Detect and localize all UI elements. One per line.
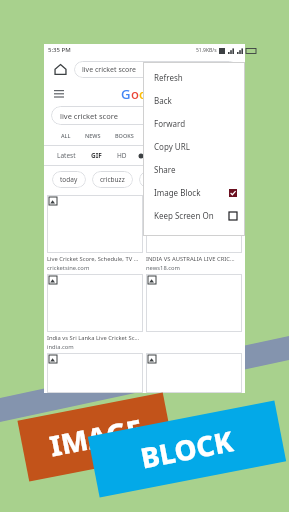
staticText: INDIA VS AUSTRALIA LIVE CRIC... [146, 255, 235, 263]
staticText: GIF [91, 151, 102, 160]
button[interactable]: ALL [54, 132, 78, 139]
staticText: Share [154, 164, 176, 175]
staticText: india.com [47, 343, 74, 351]
button[interactable]: HD [113, 151, 131, 160]
staticText: g [147, 85, 156, 103]
staticText: o [131, 85, 139, 103]
staticText: e [160, 85, 168, 103]
button[interactable]: Menu [51, 86, 67, 102]
staticText: HD [117, 151, 127, 160]
button[interactable] [146, 353, 242, 393]
button[interactable] [47, 353, 143, 393]
button[interactable]: today [52, 171, 86, 188]
button[interactable]: live cricket score [74, 61, 238, 78]
staticText: G [121, 85, 131, 103]
button[interactable]: live cricket score [51, 106, 238, 125]
button[interactable]: Copy URL [143, 135, 245, 158]
button[interactable]: Image Block [143, 181, 245, 204]
button[interactable]: India vs Sri Lanka Live Cricket Sc... [47, 274, 143, 351]
staticText: BOOKS [115, 132, 134, 139]
staticText: cricbuzz [100, 175, 125, 184]
staticText: India vs Sri Lanka Live Cricket Sc... [47, 334, 140, 342]
staticText: ALL [61, 132, 71, 139]
button[interactable]: GIF [87, 151, 106, 160]
staticText: l [156, 85, 160, 103]
staticText: Back [154, 95, 172, 106]
button[interactable]: Share [143, 158, 245, 181]
button[interactable]: ind [139, 171, 165, 188]
staticText: Live Cricket Score, Schedule, TV ... [47, 255, 139, 263]
button[interactable]: Keep Screen On [143, 204, 245, 227]
staticText: IMAGE [46, 409, 146, 465]
staticText: Latest [57, 151, 76, 160]
staticText: Forward [154, 118, 186, 129]
button[interactable]: Home [51, 60, 69, 78]
staticText: today [60, 175, 78, 184]
button[interactable]: Latest [53, 151, 80, 160]
button[interactable]: cricbuzz [92, 171, 133, 188]
button[interactable]: Refresh [143, 66, 245, 89]
staticText: cricketsine.com [47, 264, 90, 272]
button[interactable]: Forward [143, 112, 245, 135]
staticText: Copy URL [154, 141, 190, 152]
button[interactable]: INDIA VS AUSTRALIA LIVE CRIC... [146, 195, 242, 272]
staticText: NEWS [85, 132, 101, 139]
staticText: o [139, 85, 147, 103]
button[interactable]: IM [141, 132, 162, 139]
staticText: live cricket score [60, 111, 118, 121]
staticText: live cricket score [82, 65, 137, 75]
button[interactable]: Live Cricket Score, Schedule, TV ... [47, 195, 143, 272]
button[interactable]: BOOKS [108, 132, 141, 139]
staticText: BLOCK [137, 421, 237, 477]
button[interactable]: NEWS [78, 132, 108, 139]
button[interactable] [146, 274, 242, 332]
staticText: Image Block [154, 187, 201, 198]
staticText: news18.com [146, 264, 180, 272]
staticText: Refresh [154, 72, 183, 83]
button[interactable]: Back [143, 89, 245, 112]
staticText: Keep Screen On [154, 210, 214, 221]
staticText: 5:35 PM [48, 46, 71, 54]
staticText: 51.9KB/s [196, 47, 217, 54]
